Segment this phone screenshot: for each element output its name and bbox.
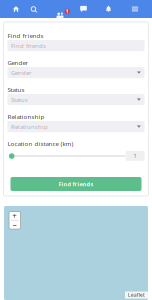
staticText: Status xyxy=(7,85,24,94)
button[interactable]: Search xyxy=(24,0,42,18)
button[interactable]: Messages xyxy=(74,0,92,18)
staticText: Find friends xyxy=(58,180,93,188)
staticText: + xyxy=(12,210,17,221)
button[interactable]: Leaflet xyxy=(125,291,148,298)
staticText: 1 xyxy=(66,8,69,15)
button[interactable]: Find friends xyxy=(7,40,144,51)
button[interactable]: Gender xyxy=(7,67,144,78)
button[interactable]: Home xyxy=(7,0,25,18)
staticText: Find friends xyxy=(7,31,43,40)
button[interactable]: Relationship xyxy=(7,121,144,132)
button[interactable]: Menu xyxy=(126,0,144,18)
button[interactable]: Status xyxy=(7,94,144,105)
staticText: Gender xyxy=(11,69,31,77)
staticText: Find friends xyxy=(11,42,46,50)
staticText: Status xyxy=(11,96,28,104)
staticText: 1 xyxy=(133,152,136,159)
staticText: Location distance (km) xyxy=(7,139,73,148)
staticText: Gender xyxy=(7,58,28,67)
staticText: – xyxy=(13,219,17,230)
button[interactable]: Zoom out xyxy=(9,221,20,229)
button[interactable]: Friend requests, 1 new xyxy=(47,0,69,18)
staticText: Relationship xyxy=(7,112,44,121)
button[interactable]: Zoom in xyxy=(9,211,20,220)
staticText: Relationship xyxy=(11,123,48,131)
staticText: Leaflet xyxy=(128,292,145,298)
button[interactable]: Distance xyxy=(9,153,14,159)
button[interactable]: Find friends xyxy=(10,177,141,191)
button[interactable]: Notifications xyxy=(99,0,117,18)
